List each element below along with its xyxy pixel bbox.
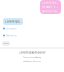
- staticText: Lorem ipsum d: [5, 20, 21, 23]
- staticText: Lorem ipsum do: [42, 1, 59, 4]
- staticText: Dolor sit amet: [6, 34, 17, 37]
- staticText: sed do eiusmod tempor: [22, 60, 41, 62]
- staticText: sit amet, conse: [42, 5, 59, 9]
- staticText: Lorem ipsum: [6, 27, 17, 30]
- staticText: Lorem ipsum dolor: [18, 51, 45, 54]
- staticText: adipiscing elit: [42, 10, 59, 13]
- staticText: Consectetur adipiscing: [23, 56, 41, 58]
